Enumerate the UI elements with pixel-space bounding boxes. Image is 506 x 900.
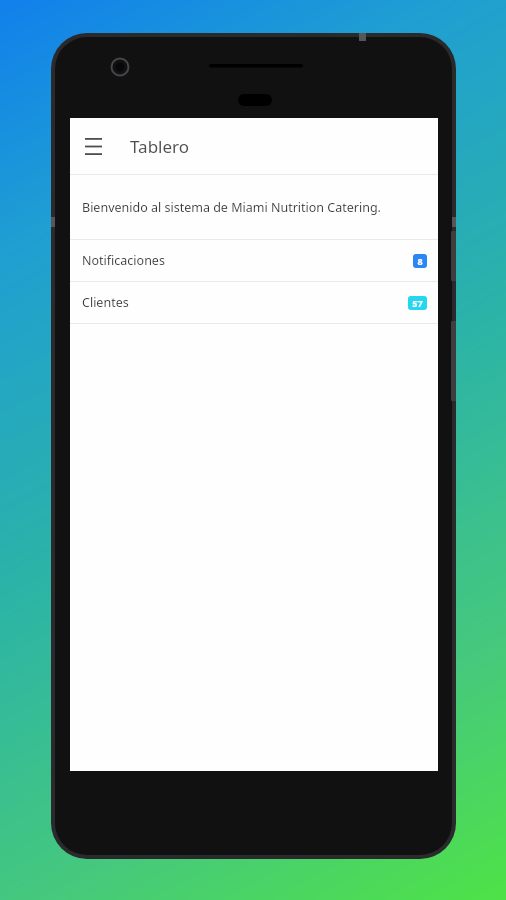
staticText: 57 [412,297,423,309]
staticText: Bienvenido al sistema de Miami Nutrition… [82,199,381,216]
staticText: Clientes [82,294,129,311]
staticText: Notificaciones [82,252,165,269]
button[interactable]: Open navigation menu [73,126,113,166]
staticText: Tablero [130,135,190,158]
button[interactable]: Clientes [70,282,438,323]
button[interactable]: Notificaciones [70,240,438,281]
staticText: 8 [417,255,423,267]
